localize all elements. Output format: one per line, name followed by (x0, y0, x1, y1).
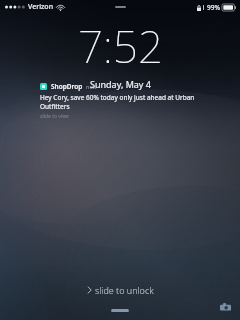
staticText: Hey Cory, save 60% today only just ahead… (40, 93, 200, 111)
staticText: Sunday, May 4 (90, 78, 151, 90)
staticText: Verizon (28, 2, 54, 12)
staticText: 99% (207, 3, 220, 12)
staticText: ShopDrop (51, 82, 83, 91)
button[interactable]: ShopDrop (40, 82, 200, 120)
button[interactable]: slide to unlock (87, 284, 154, 296)
staticText: now (86, 83, 97, 90)
staticText: slide to unlock (95, 284, 154, 296)
staticText: slide to view (40, 113, 69, 120)
button[interactable]: Open camera (218, 300, 232, 314)
staticText: 7:52 (78, 16, 163, 76)
